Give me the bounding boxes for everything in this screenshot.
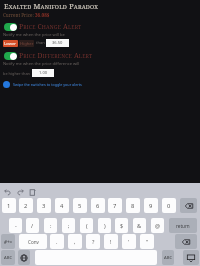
staticText: than [36,40,45,46]
staticText: 7 [113,202,117,210]
button[interactable]: 1 [2,198,16,213]
button[interactable]: Higher [19,40,34,47]
staticText: ABC [4,255,13,261]
staticText: $ [120,222,124,229]
button[interactable]: Redo [15,187,25,197]
button[interactable]: 4 [55,198,69,213]
staticText: 2 [24,202,28,210]
button[interactable]: return [169,218,197,233]
button[interactable]: 1.00 [32,69,54,77]
button[interactable]: ( [80,218,93,233]
button[interactable]: 3 [37,198,51,213]
staticText: PRICE CHANGE ALERT [19,22,82,31]
button[interactable]: 7 [108,198,122,213]
staticText: ; [68,222,70,229]
button[interactable]: : [44,218,57,233]
staticText: 1.00 [39,70,48,76]
button[interactable]: . [50,234,64,249]
button[interactable]: , [68,234,82,249]
staticText: PRICE DIFFERENCE ALERT [19,51,93,60]
staticText: 3 [42,202,46,210]
button[interactable]: ABC [1,250,15,265]
button[interactable]: ! [104,234,118,249]
button[interactable]: ABC [162,250,174,265]
staticText: Higher [20,41,34,47]
button[interactable]: 9 [144,198,158,213]
button[interactable]: 36.50 [46,39,69,47]
staticText: Current Price: [3,12,35,18]
button[interactable]: Toggle alert [4,23,17,31]
staticText: ABC [164,255,173,261]
staticText: @ [155,222,160,229]
button[interactable]: Paste [27,187,37,197]
staticText: 36.08$ [35,12,50,18]
staticText: ? [92,238,95,245]
button[interactable]: / [26,218,39,233]
staticText: / [31,222,34,229]
staticText: 8 [131,202,135,210]
staticText: , [74,238,76,245]
staticText: " [146,238,149,245]
button[interactable]: ; [62,218,75,233]
button[interactable]: " [140,234,154,249]
staticText: : [50,222,52,229]
button[interactable]: Undo [2,187,12,197]
staticText: 0 [167,202,171,210]
button[interactable]: @ [151,218,164,233]
button[interactable]: & [133,218,146,233]
button[interactable]: ? [86,234,100,249]
staticText: & [137,222,142,229]
staticText: be higher than [3,71,31,76]
button[interactable]: ) [98,218,111,233]
staticText: . [56,238,58,245]
staticText: ! [110,238,112,245]
staticText: ' [128,238,130,245]
staticText: ) [104,222,106,229]
staticText: 36.50 [52,40,63,46]
button[interactable]: Backspace [180,198,197,213]
staticText: 1 [7,202,11,210]
staticText: #+= [4,239,13,245]
button[interactable]: $ [115,218,128,233]
button[interactable]: 5 [73,198,87,213]
staticText: Lower [4,41,17,47]
button[interactable]: 2 [19,198,33,213]
button[interactable]: Backspace [175,234,197,249]
button[interactable]: Toggle alert [4,22,82,31]
staticText: Notify me when the price difference will [3,61,80,67]
staticText: 6 [96,202,100,210]
staticText: - [15,222,17,229]
button[interactable]: Change language [18,250,30,265]
staticText: Swipe the switches to toggle your alerts [13,82,82,87]
button[interactable]: Toggle alert [4,52,17,60]
staticText: 4 [60,202,64,210]
staticText: 5 [78,202,82,210]
button[interactable]: - [9,218,22,233]
staticText: Notify me when the price will be [3,32,65,38]
staticText: ( [86,222,88,229]
staticText: EXALTED MANIFOLD PARADOX [4,1,99,11]
button[interactable]: ' [122,234,136,249]
staticText: return [176,223,190,229]
button[interactable]: Conv [19,234,47,249]
button[interactable]: 6 [91,198,105,213]
button[interactable]: #+= [1,234,15,249]
button[interactable]: Lower [3,40,18,47]
button[interactable]: Toggle alert [4,51,93,60]
button[interactable]: Hide keyboard [183,250,199,265]
button[interactable]: 8 [126,198,140,213]
staticText: Conv [28,239,39,245]
staticText: 9 [149,202,153,210]
button[interactable]: 0 [162,198,176,213]
